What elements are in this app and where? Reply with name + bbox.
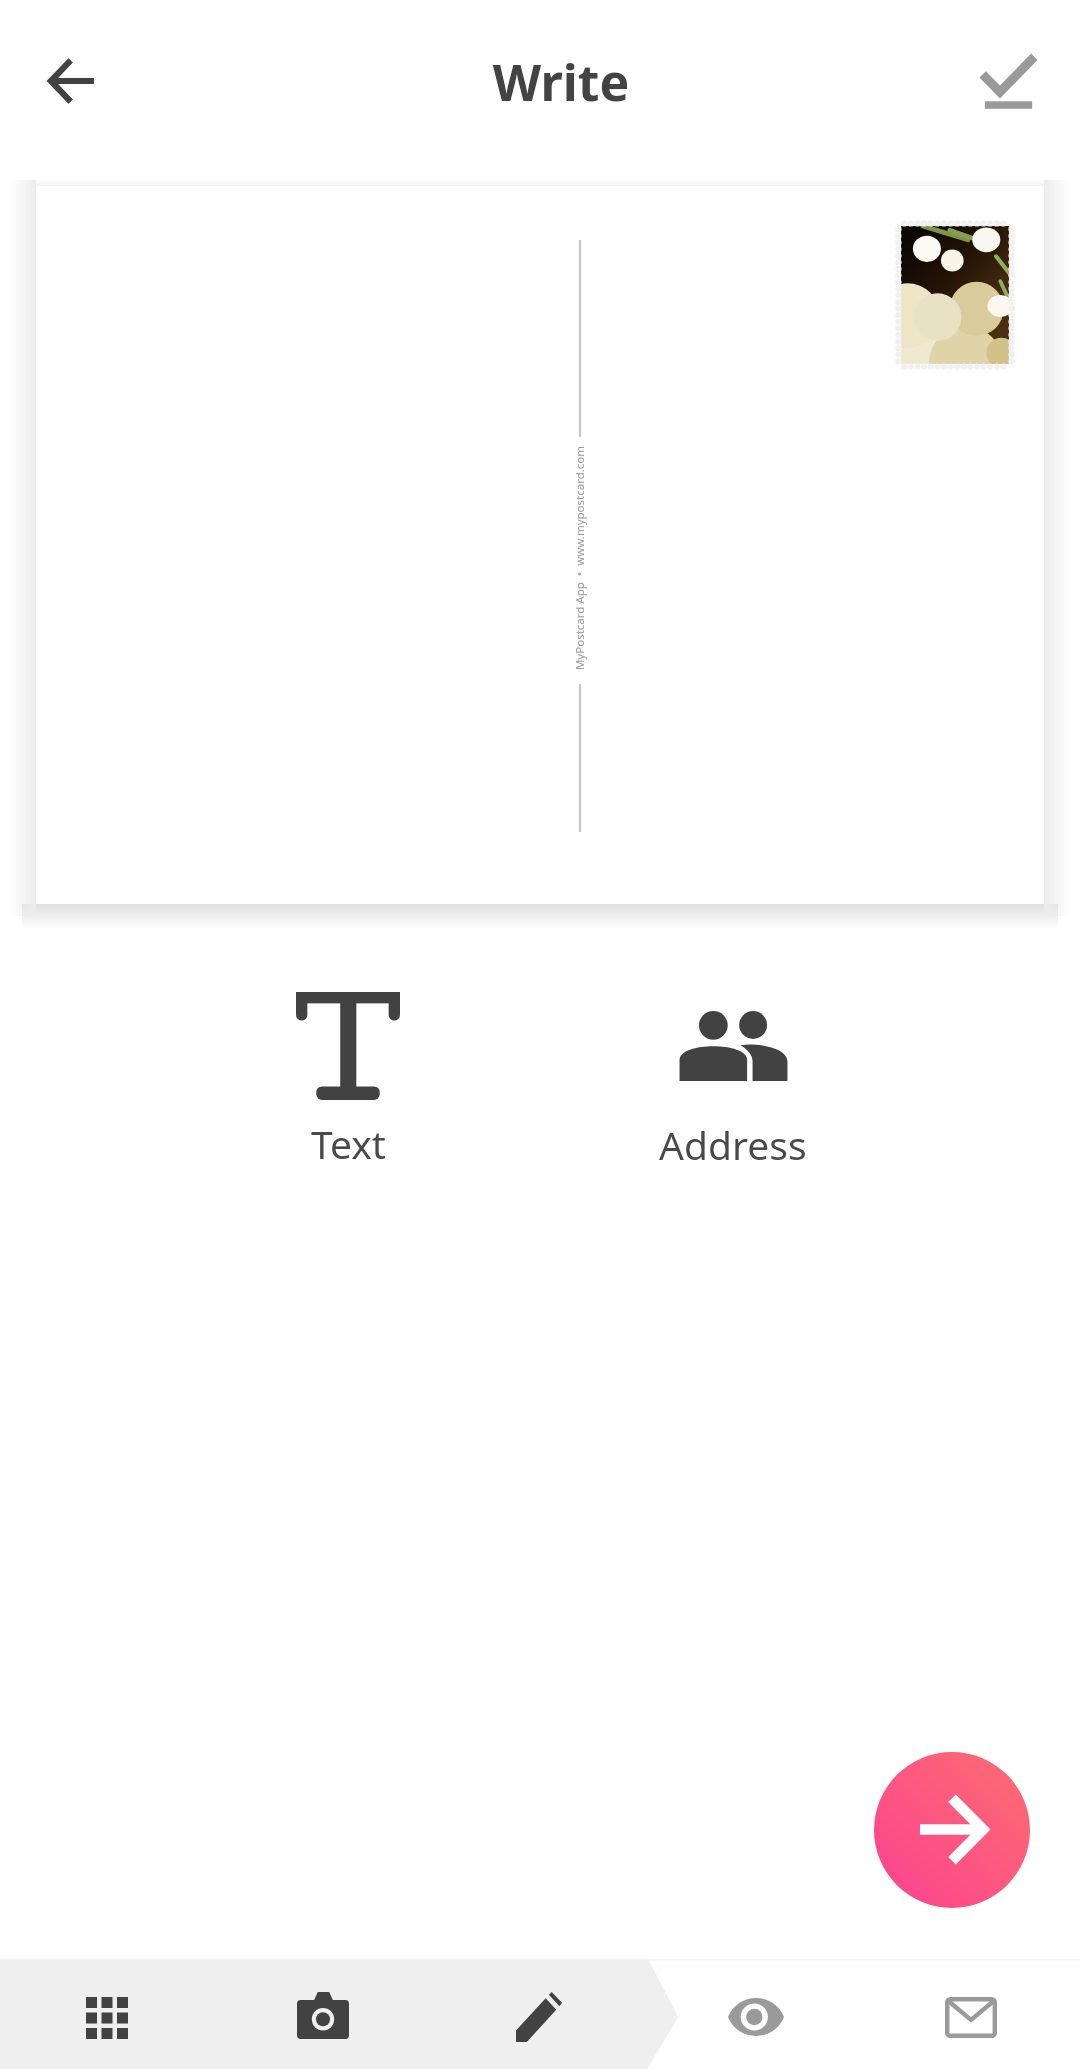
button[interactable]: Send <box>917 1959 1025 2069</box>
button[interactable]: Edit <box>485 1959 593 2069</box>
button[interactable]: Text <box>248 992 448 1170</box>
button[interactable]: Postcard preview <box>36 186 1044 904</box>
button[interactable]: Preview <box>702 1959 810 2069</box>
staticText: Address <box>659 1118 807 1171</box>
button[interactable]: Address <box>633 982 833 1171</box>
staticText: MyPostcard App • www.mypostcard.com <box>572 398 588 718</box>
button[interactable]: Camera <box>269 1959 377 2069</box>
button[interactable]: Next <box>874 1752 1030 1908</box>
staticText: Write <box>21 48 1080 116</box>
staticText: Text <box>311 1117 386 1170</box>
button[interactable]: Gallery <box>53 1959 161 2069</box>
button[interactable]: Done <box>964 37 1052 125</box>
button[interactable]: Back <box>28 37 116 125</box>
